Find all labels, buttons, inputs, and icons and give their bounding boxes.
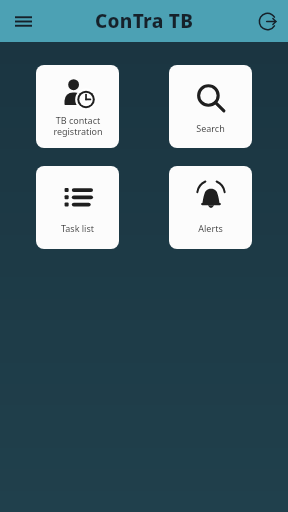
button[interactable]: Task list	[36, 166, 119, 249]
staticText: Alerts	[198, 222, 223, 234]
button[interactable]: Log out	[252, 6, 282, 36]
staticText: TB contact registration	[53, 114, 103, 138]
button[interactable]: TB contact registration	[36, 65, 119, 148]
staticText: Search	[196, 122, 225, 134]
staticText: Task list	[61, 222, 94, 234]
staticText: ConTra TB	[95, 8, 194, 34]
button[interactable]: Search	[169, 65, 252, 148]
button[interactable]: Alerts	[169, 166, 252, 249]
button[interactable]: Open navigation menu	[7, 5, 39, 37]
